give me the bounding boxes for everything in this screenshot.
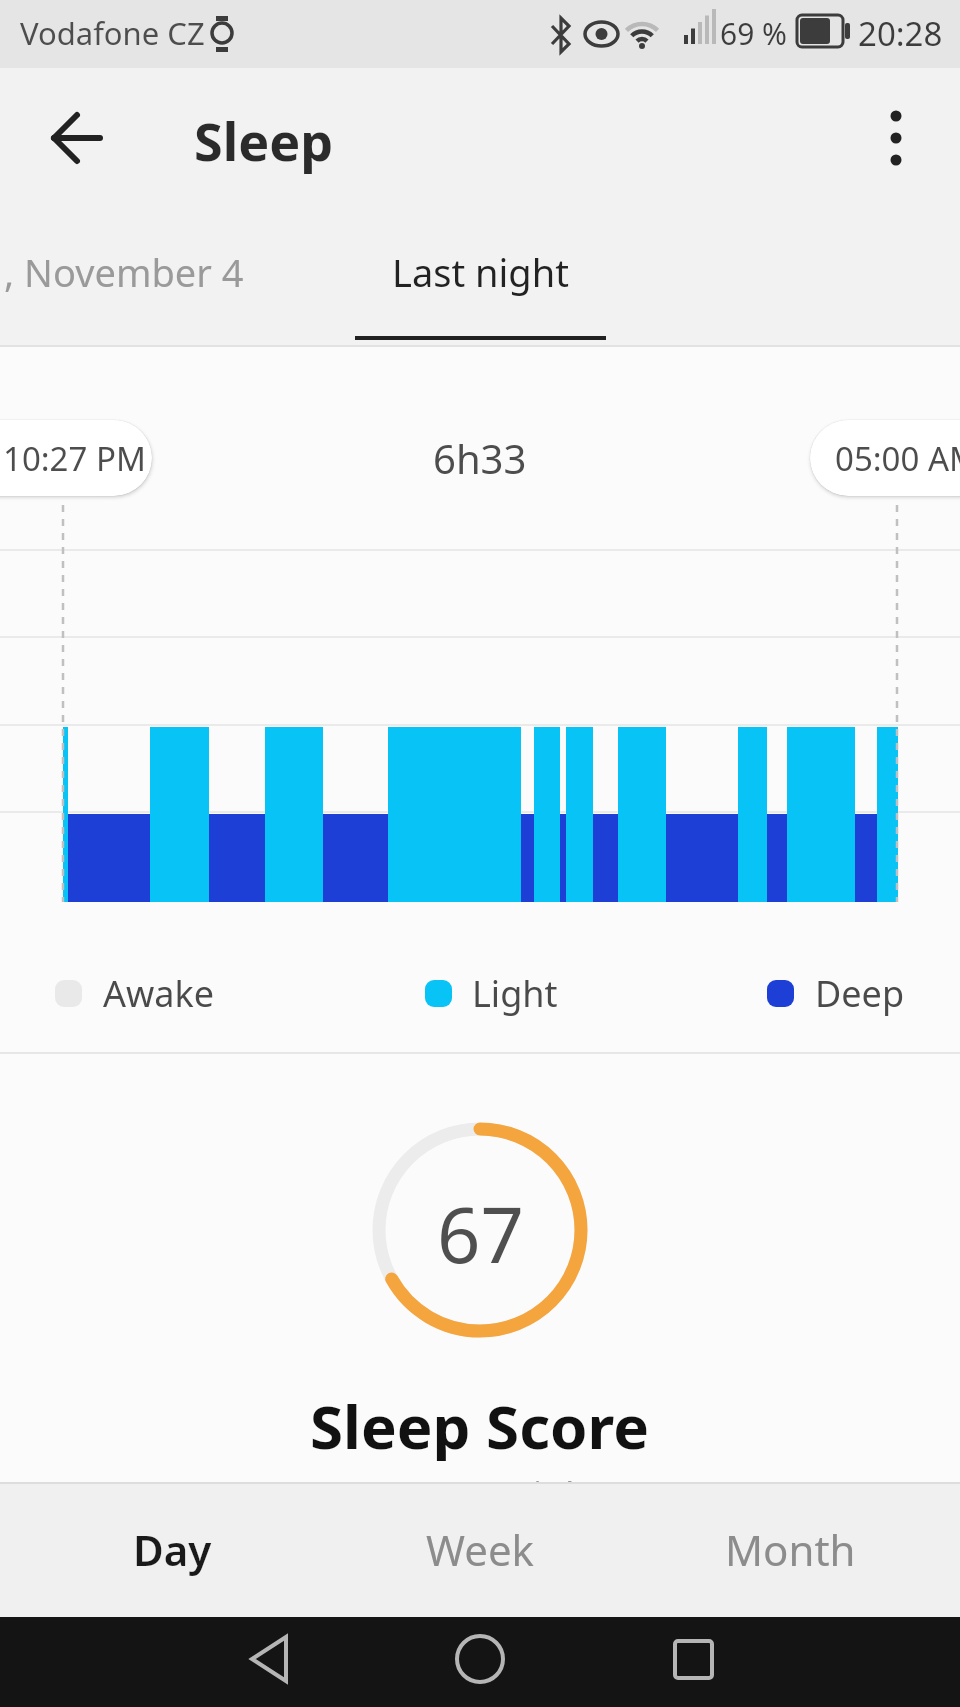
staticText: Sleep Score [310,1385,650,1461]
button[interactable] [846,100,946,180]
staticText: Light [472,969,558,1018]
staticText: 6h33 [433,431,527,485]
staticText: Awake [103,969,215,1018]
staticText: Sleep [194,105,334,175]
button[interactable]: Week [405,1515,555,1583]
button[interactable] [633,1620,753,1704]
button[interactable]: Sleep [194,105,364,175]
staticText: Deep [815,969,905,1018]
button[interactable]: Day [100,1515,245,1583]
staticText: 10:27 PM [3,436,146,481]
staticText: 67 [437,1182,524,1282]
button[interactable] [30,100,140,180]
staticText: 05:00 AM [835,436,960,481]
button[interactable] [420,1620,540,1704]
staticText: 69 % [720,13,788,54]
staticText: Day [133,1521,212,1578]
staticText: Last night [392,246,569,298]
button[interactable] [210,1620,330,1704]
button[interactable]: Last night [355,240,606,304]
button[interactable]: Month [710,1515,870,1583]
staticText: Vodafone CZ [20,12,205,54]
button[interactable]: , November 4 [4,240,264,304]
staticText: , November 4 [4,246,244,298]
staticText: 20:28 [858,11,943,56]
staticText: Average night [358,1468,602,1512]
staticText: Month [725,1521,856,1578]
staticText: Week [426,1521,535,1578]
